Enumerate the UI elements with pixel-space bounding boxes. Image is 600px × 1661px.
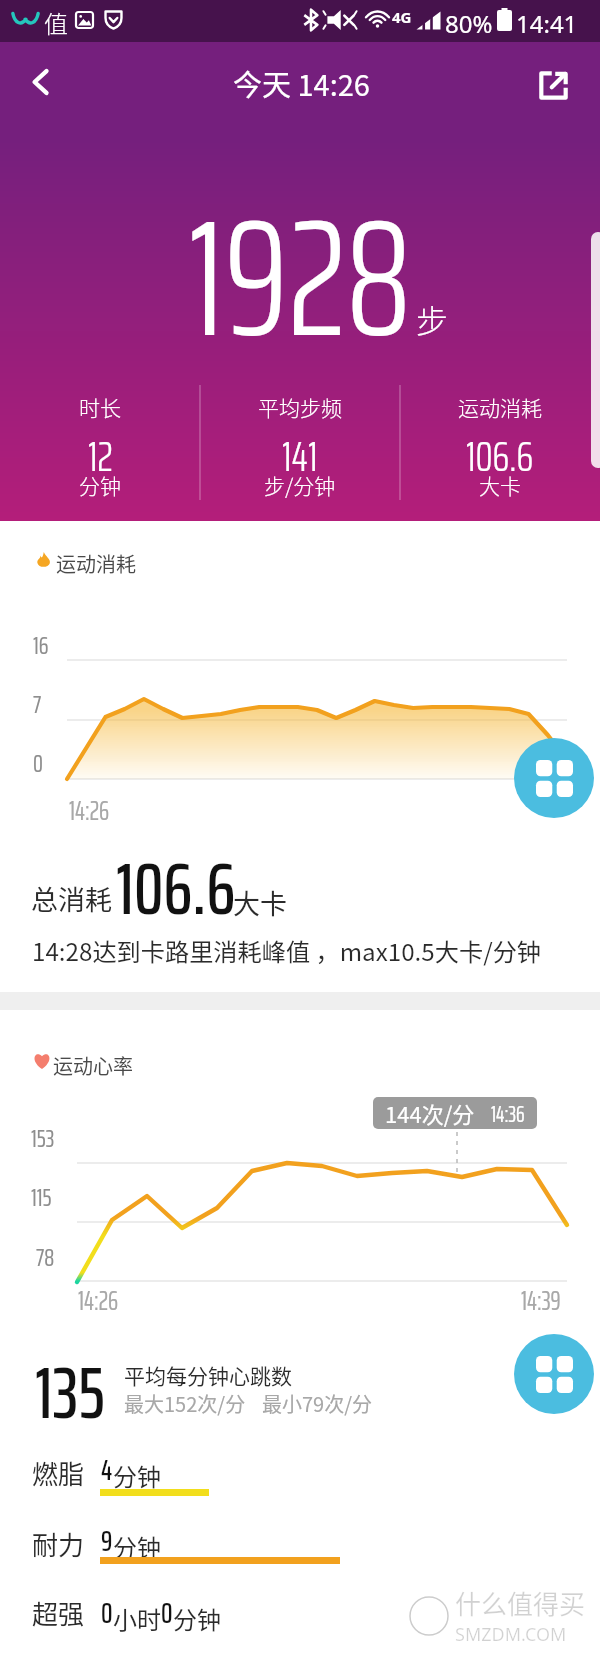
staticText: 7	[33, 685, 42, 724]
staticText: 0	[161, 1590, 173, 1636]
staticText: 平均步频	[258, 392, 342, 422]
button[interactable]: Apps menu	[514, 738, 594, 818]
staticText: 什么值得买	[455, 1584, 586, 1622]
staticText: 144次/分	[385, 1097, 475, 1129]
staticText: 0	[101, 1590, 113, 1636]
staticText: 耐力	[32, 1525, 85, 1563]
staticText: 运动消耗	[56, 549, 136, 578]
staticText: 4	[101, 1447, 113, 1493]
button[interactable]: 耐力	[0, 1511, 600, 1582]
staticText: 0	[33, 744, 43, 783]
staticText: 153	[31, 1119, 55, 1158]
staticText: 分钟	[173, 1601, 221, 1636]
staticText: 大卡	[479, 470, 521, 500]
staticText: 燃脂	[32, 1454, 85, 1492]
staticText: 106.6	[466, 422, 534, 490]
staticText: 12	[88, 422, 113, 490]
staticText: 今天 14:26	[233, 62, 370, 104]
staticText: 16	[33, 626, 49, 665]
staticText: 最大152次/分	[124, 1389, 246, 1418]
staticText: 14:26	[69, 790, 110, 831]
staticText: 14:41	[516, 7, 578, 40]
staticText: 时长	[79, 392, 121, 422]
button[interactable]: Share	[519, 42, 589, 140]
button[interactable]: Back	[8, 42, 74, 140]
staticText: 80%	[445, 7, 493, 40]
staticText: 115	[31, 1178, 52, 1217]
staticText: 运动消耗	[458, 392, 542, 422]
staticText: 最小79次/分	[262, 1389, 373, 1418]
button[interactable]: 燃脂	[0, 1440, 600, 1511]
staticText: 1928	[188, 149, 412, 407]
staticText: SMZDM.COM	[455, 1622, 567, 1647]
staticText: 步/分钟	[264, 470, 336, 500]
staticText: 135	[35, 1335, 105, 1440]
staticText: 大卡	[233, 883, 287, 922]
staticText: 步	[416, 296, 449, 342]
staticText: 分钟	[113, 1529, 161, 1564]
staticText: 值	[44, 5, 68, 40]
button[interactable]: 超强	[0, 1582, 600, 1653]
staticText: 9	[101, 1518, 113, 1564]
staticText: 14:26	[78, 1280, 119, 1321]
button[interactable]: Apps menu	[514, 1334, 594, 1414]
staticText: 14:39	[521, 1280, 561, 1321]
staticText: 4G	[392, 7, 412, 27]
staticText: 小时	[113, 1601, 161, 1636]
staticText: 分钟	[79, 470, 121, 500]
staticText: 14:28达到卡路里消耗峰值 ，max10.5大卡/分钟	[32, 933, 542, 968]
staticText: 总消耗	[31, 879, 112, 918]
staticText: 超强	[32, 1594, 85, 1632]
staticText: 78	[36, 1238, 55, 1277]
staticText: 106.6	[116, 830, 236, 946]
staticText: 分钟	[113, 1458, 161, 1493]
staticText: 141	[282, 422, 318, 490]
staticText: 14:36	[491, 1097, 525, 1129]
staticText: 运动心率	[53, 1051, 133, 1080]
staticText: 平均每分钟心跳数	[124, 1360, 292, 1390]
